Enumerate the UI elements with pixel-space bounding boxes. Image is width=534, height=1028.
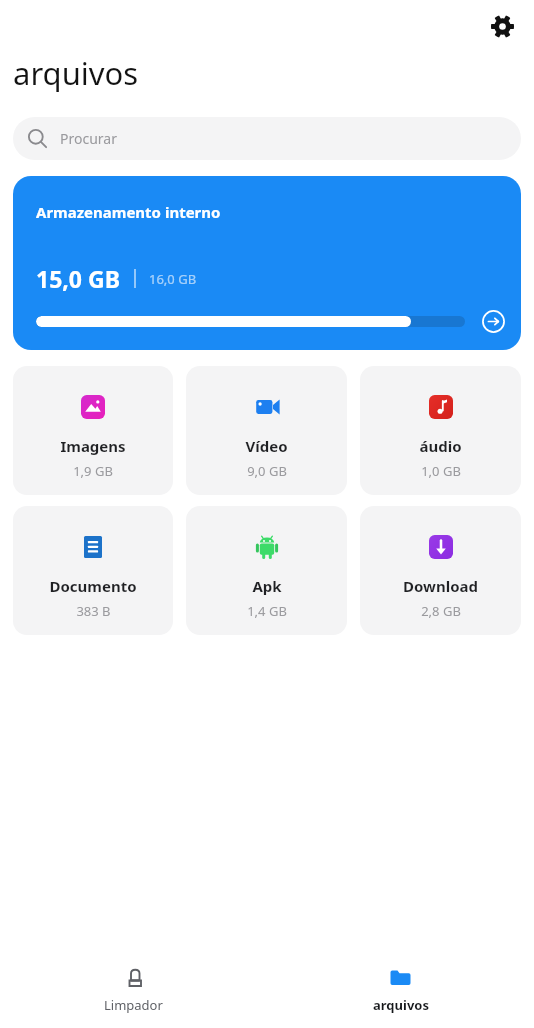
staticText: 1,4 GB — [247, 602, 287, 620]
staticText: Apk — [252, 576, 282, 596]
staticText: 16,0 GB — [149, 270, 197, 288]
staticText: Imagens — [60, 436, 126, 456]
button[interactable]: Armazenamento interno — [13, 176, 521, 350]
button[interactable]: áudio — [360, 366, 521, 495]
button[interactable]: Vídeo — [186, 366, 347, 495]
button[interactable]: Apk — [186, 506, 347, 635]
staticText: Download — [403, 576, 478, 596]
staticText: arquivos — [373, 996, 429, 1014]
staticText: Armazenamento interno — [36, 202, 221, 222]
button[interactable]: Documento — [13, 506, 173, 635]
staticText: Documento — [49, 576, 137, 596]
staticText: 1,9 GB — [73, 462, 113, 480]
button[interactable]: arquivos — [267, 957, 534, 1022]
button[interactable]: Download — [360, 506, 521, 635]
staticText: 2,8 GB — [421, 602, 461, 620]
staticText: 9,0 GB — [247, 462, 287, 480]
staticText: Limpador — [104, 996, 163, 1014]
button[interactable]: Imagens — [13, 366, 173, 495]
button[interactable]: Open internal storage — [480, 308, 507, 335]
staticText: Procurar — [60, 129, 117, 148]
staticText: Vídeo — [245, 436, 288, 456]
staticText: áudio — [419, 436, 462, 456]
staticText: 383 B — [76, 602, 111, 620]
button[interactable]: Limpador — [0, 957, 267, 1022]
button[interactable]: Settings — [480, 4, 524, 48]
button[interactable]: Procurar — [13, 117, 521, 160]
staticText: arquivos — [13, 52, 139, 94]
staticText: 15,0 GB — [36, 263, 120, 294]
staticText: 1,0 GB — [421, 462, 461, 480]
